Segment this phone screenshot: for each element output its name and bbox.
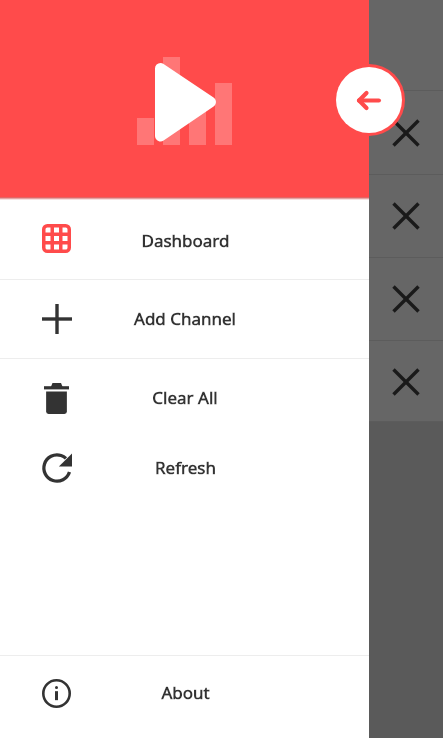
- button[interactable]: Close: [388, 364, 424, 400]
- staticText: Dashboard: [141, 229, 230, 252]
- button[interactable]: Dashboard: [0, 197, 369, 279]
- staticText: Add Channel: [134, 307, 236, 330]
- staticText: Clear All: [152, 386, 218, 409]
- button[interactable]: Back: [333, 64, 405, 136]
- button[interactable]: Close: [388, 281, 424, 317]
- staticText: Refresh: [155, 456, 216, 479]
- button[interactable]: Close: [388, 198, 424, 234]
- button[interactable]: Close: [388, 115, 424, 151]
- button[interactable]: Add Channel: [0, 280, 369, 358]
- button[interactable]: Clear All: [0, 363, 369, 433]
- button[interactable]: Refresh: [0, 433, 369, 503]
- staticText: About: [161, 681, 210, 704]
- button[interactable]: About: [0, 652, 369, 734]
